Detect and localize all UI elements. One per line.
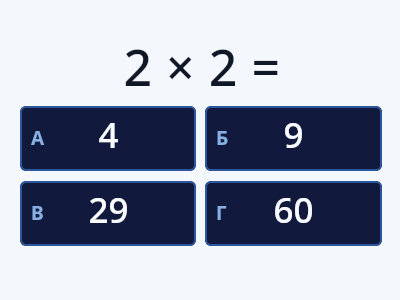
staticText: 9	[283, 111, 304, 159]
button[interactable]: 60	[205, 181, 382, 246]
button[interactable]: 9	[205, 106, 382, 171]
staticText: 60	[273, 186, 314, 234]
staticText: 4	[98, 111, 119, 159]
staticText: Б	[216, 125, 229, 151]
staticText: А	[31, 125, 45, 151]
staticText: В	[31, 200, 44, 226]
staticText: Г	[216, 200, 227, 226]
button[interactable]: 29	[20, 181, 196, 246]
staticText: 2 × 2 =	[123, 33, 281, 101]
button[interactable]: 4	[20, 106, 196, 171]
staticText: 29	[88, 186, 129, 234]
